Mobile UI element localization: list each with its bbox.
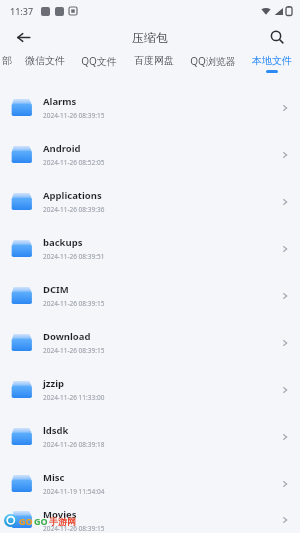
staticText: backups	[43, 236, 83, 249]
staticText: 2024-11-26 08:39:15	[43, 299, 105, 308]
staticText: 2024-11-19 11:54:04	[43, 487, 105, 496]
button[interactable]: 百度网盘	[132, 52, 176, 72]
button[interactable]: Search	[262, 22, 292, 52]
staticText: GO	[34, 515, 48, 527]
staticText: Alarms	[43, 95, 77, 108]
button[interactable]: Applications	[0, 178, 300, 225]
staticText: jzzip	[43, 377, 65, 390]
staticText: Download	[43, 330, 91, 343]
staticText: 11:37	[10, 5, 34, 17]
button[interactable]: DCIM	[0, 272, 300, 319]
staticText: ldsdk	[43, 424, 69, 437]
staticText: 2024-11-26 08:39:51	[43, 252, 105, 261]
staticText: 2024-11-26 11:33:00	[43, 393, 105, 402]
staticText: Movies	[43, 508, 77, 521]
button[interactable]: jzzip	[0, 366, 300, 413]
staticText: 部	[2, 54, 12, 67]
staticText: 2024-11-26 08:39:15	[43, 111, 105, 120]
staticText: 本地文件	[252, 54, 292, 67]
staticText: 2024-11-26 08:39:15	[43, 346, 105, 355]
button[interactable]: Misc	[0, 460, 300, 507]
button[interactable]: 部	[0, 52, 14, 72]
staticText: 手游网	[49, 516, 76, 527]
staticText: 2024-11-26 08:39:15	[43, 524, 105, 533]
staticText: Applications	[43, 189, 102, 202]
staticText: QQ浏览器	[190, 54, 236, 68]
staticText: 微信文件	[25, 54, 65, 67]
button[interactable]: 本地文件	[250, 52, 294, 75]
staticText: DCIM	[43, 283, 69, 296]
button[interactable]: QQ浏览器	[188, 52, 238, 73]
staticText: 压缩包	[132, 30, 168, 45]
staticText: 2024-11-26 08:39:18	[43, 440, 105, 449]
button[interactable]: ldsdk	[0, 413, 300, 460]
staticText: QQ文件	[81, 54, 117, 68]
button[interactable]: Alarms	[0, 84, 300, 131]
button[interactable]: QQ文件	[79, 52, 119, 73]
staticText: 2024-11-26 08:39:36	[43, 205, 105, 214]
button[interactable]: Movies	[0, 507, 300, 533]
staticText: GO	[19, 515, 33, 527]
button[interactable]: 微信文件	[23, 52, 67, 72]
button[interactable]: Back	[8, 22, 38, 52]
button[interactable]: backups	[0, 225, 300, 272]
button[interactable]: Download	[0, 319, 300, 366]
staticText: 百度网盘	[134, 54, 174, 67]
staticText: 2024-11-26 08:52:05	[43, 158, 105, 167]
staticText: Android	[43, 142, 81, 155]
staticText: Misc	[43, 471, 65, 484]
button[interactable]: Android	[0, 131, 300, 178]
